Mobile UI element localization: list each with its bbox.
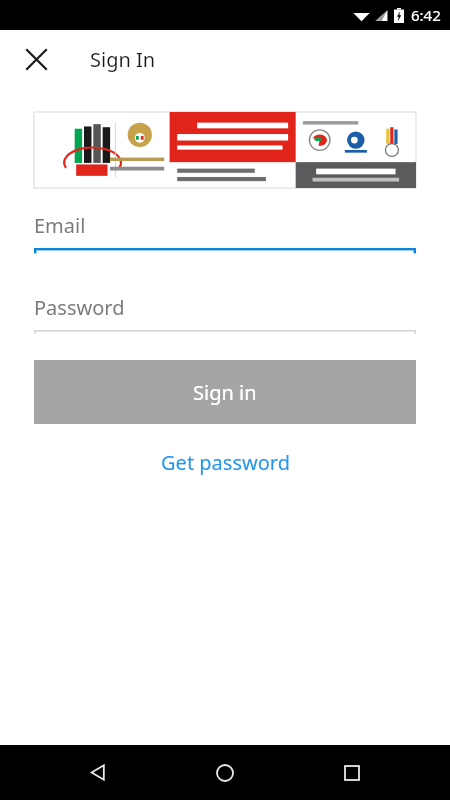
staticText: Sign in: [193, 379, 257, 406]
staticText: Get password: [161, 449, 290, 476]
button[interactable]: Home: [196, 745, 254, 800]
staticText: Password: [34, 294, 125, 321]
button[interactable]: Recent apps: [323, 745, 381, 800]
staticText: Email: [34, 212, 86, 239]
button[interactable]: Back: [69, 745, 127, 800]
button[interactable]: Sign in: [34, 360, 416, 424]
button[interactable]: Email: [34, 212, 416, 254]
button[interactable]: Close: [14, 37, 58, 81]
button[interactable]: Password: [34, 294, 416, 335]
staticText: 6:42: [411, 5, 441, 25]
button[interactable]: Get password: [0, 442, 450, 482]
staticText: Sign In: [90, 46, 156, 73]
